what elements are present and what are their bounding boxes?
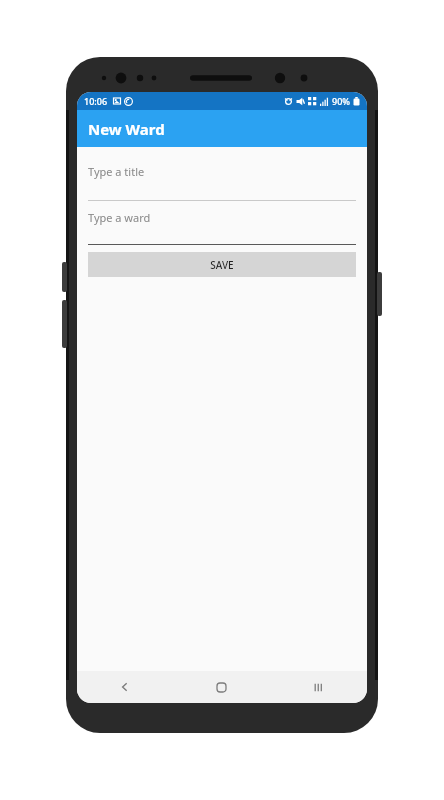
staticText: Type a ward (88, 210, 151, 225)
button[interactable]: Back (77, 671, 173, 703)
staticText: Type a title (88, 164, 145, 179)
staticText: SAVE (210, 258, 234, 272)
button[interactable]: Recent apps (270, 671, 367, 703)
button[interactable]: Home (173, 671, 270, 703)
staticText: 90% (332, 95, 350, 107)
button[interactable]: New Ward (77, 110, 367, 147)
button[interactable]: Type a title (88, 155, 356, 201)
button[interactable]: SAVE (88, 252, 356, 277)
staticText: New Ward (88, 119, 165, 139)
staticText: 10:06 (84, 95, 108, 107)
button[interactable]: Type a ward (88, 201, 356, 245)
